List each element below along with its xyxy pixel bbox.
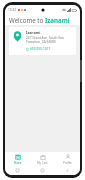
button[interactable]: Store xyxy=(5,152,30,166)
staticText: Profile xyxy=(63,161,72,165)
button[interactable]: Back xyxy=(55,166,80,175)
staticText: My Cart xyxy=(37,161,48,165)
button[interactable]: My Cart xyxy=(30,152,55,166)
staticText: Francisco, CA 94080 xyxy=(26,40,56,44)
staticText: 257 Grant Ave, South San xyxy=(26,36,64,40)
button[interactable]: 650-555-1017 xyxy=(26,46,53,52)
button[interactable]: Home xyxy=(30,166,55,175)
staticText: Store xyxy=(14,161,22,165)
button[interactable]: Recents xyxy=(5,166,30,175)
staticText: 650-555-1017 xyxy=(30,47,51,51)
button[interactable]: Profile xyxy=(55,152,80,166)
other: Location xyxy=(12,31,23,42)
button[interactable]: Location xyxy=(9,27,76,55)
staticText: 10:32 xyxy=(8,8,17,12)
staticText: Izanami xyxy=(26,30,41,35)
staticText: Welcome to Izanami xyxy=(9,16,70,24)
